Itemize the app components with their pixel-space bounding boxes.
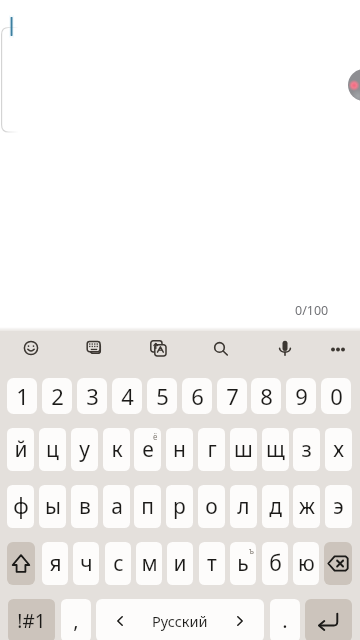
button[interactable]: 8 (251, 378, 281, 414)
staticText: ъ (249, 545, 254, 556)
button[interactable]: Shift (7, 542, 35, 585)
staticText: ш (234, 435, 253, 464)
button[interactable]: ь (230, 542, 256, 585)
button[interactable]: й (7, 428, 34, 471)
button[interactable]: м (136, 542, 162, 585)
button[interactable]: ш (230, 428, 257, 471)
button[interactable]: 9 (286, 378, 316, 414)
button[interactable]: 3 (77, 378, 107, 414)
button[interactable]: Profile (348, 69, 360, 101)
button[interactable]: с (105, 542, 131, 585)
staticText: р (173, 492, 186, 521)
staticText: !#1 (17, 608, 46, 634)
staticText: ю (298, 549, 315, 578)
button[interactable]: щ (262, 428, 289, 471)
button[interactable]: у (71, 428, 98, 471)
button[interactable]: 1 (7, 378, 37, 414)
button[interactable]: т (199, 542, 225, 585)
staticText: 3 (86, 381, 99, 411)
staticText: 5 (156, 381, 169, 411)
staticText: ё (153, 431, 158, 442)
staticText: в (79, 492, 91, 521)
button[interactable]: 6 (182, 378, 212, 414)
button[interactable]: Translate (140, 330, 176, 366)
staticText: й (14, 435, 28, 464)
staticText: у (79, 435, 90, 464)
staticText: . (282, 607, 288, 634)
button[interactable]: я (42, 542, 68, 585)
staticText: м (141, 549, 158, 578)
button[interactable]: 4 (112, 378, 142, 414)
button[interactable]: ц (39, 428, 66, 471)
button[interactable]: Sticker keyboard (76, 330, 112, 366)
staticText: с (113, 549, 124, 578)
button[interactable]: ю (293, 542, 319, 585)
staticText: ж (299, 492, 315, 521)
button[interactable]: и (167, 542, 193, 585)
staticText: э (333, 492, 344, 521)
staticText: 0/100 (295, 302, 329, 319)
staticText: х (333, 435, 344, 464)
button[interactable]: 5 (147, 378, 177, 414)
staticText: з (301, 435, 312, 464)
staticText: ь (237, 549, 249, 578)
button[interactable]: д (262, 485, 289, 528)
staticText: 2 (51, 381, 64, 411)
button[interactable]: ф (7, 485, 34, 528)
button[interactable]: Emoji (13, 330, 49, 366)
button[interactable]: 0 (321, 378, 351, 414)
button[interactable]: к (103, 428, 130, 471)
staticText: щ (266, 435, 285, 464)
staticText: и (173, 549, 187, 578)
button[interactable]: More options (320, 330, 356, 366)
staticText: я (49, 549, 62, 578)
button[interactable]: а (103, 485, 130, 528)
button[interactable]: н (166, 428, 193, 471)
button[interactable]: п (134, 485, 161, 528)
staticText: ч (80, 549, 93, 578)
staticText: е (142, 435, 154, 464)
button[interactable]: о (198, 485, 225, 528)
staticText: 4 (121, 381, 134, 411)
staticText: 1 (16, 381, 29, 411)
button[interactable]: 7 (217, 378, 247, 414)
button[interactable]: Русский (96, 599, 264, 640)
staticText: ц (46, 435, 59, 464)
button[interactable]: , (61, 599, 91, 640)
button[interactable]: Backspace (324, 542, 352, 585)
staticText: н (173, 435, 186, 464)
staticText: а (111, 492, 123, 521)
staticText: ы (45, 492, 61, 521)
button[interactable]: ч (73, 542, 99, 585)
button[interactable]: ы (39, 485, 66, 528)
button[interactable]: з (293, 428, 320, 471)
button[interactable] (0, 0, 360, 160)
button[interactable]: ж (293, 485, 320, 528)
staticText: 8 (260, 381, 273, 411)
staticText: к (111, 435, 123, 464)
button[interactable]: б (262, 542, 288, 585)
button[interactable]: Voice input (267, 330, 303, 366)
staticText: ф (13, 492, 29, 521)
button[interactable]: Enter (305, 599, 352, 640)
button[interactable]: э (325, 485, 352, 528)
button[interactable]: . (270, 599, 300, 640)
button[interactable]: Search (202, 330, 238, 366)
staticText: о (205, 492, 218, 521)
button[interactable]: е (134, 428, 161, 471)
staticText: 6 (191, 381, 204, 411)
button[interactable]: р (166, 485, 193, 528)
staticText: , (73, 607, 79, 634)
staticText: д (269, 492, 282, 521)
button[interactable]: х (325, 428, 352, 471)
staticText: т (207, 549, 217, 578)
button[interactable]: л (230, 485, 257, 528)
button[interactable]: г (198, 428, 225, 471)
button[interactable]: !#1 (8, 599, 55, 640)
staticText: 7 (226, 381, 239, 411)
staticText: п (141, 492, 154, 521)
staticText: 9 (295, 381, 308, 411)
button[interactable]: в (71, 485, 98, 528)
staticText: г (207, 435, 217, 464)
button[interactable]: 2 (42, 378, 72, 414)
